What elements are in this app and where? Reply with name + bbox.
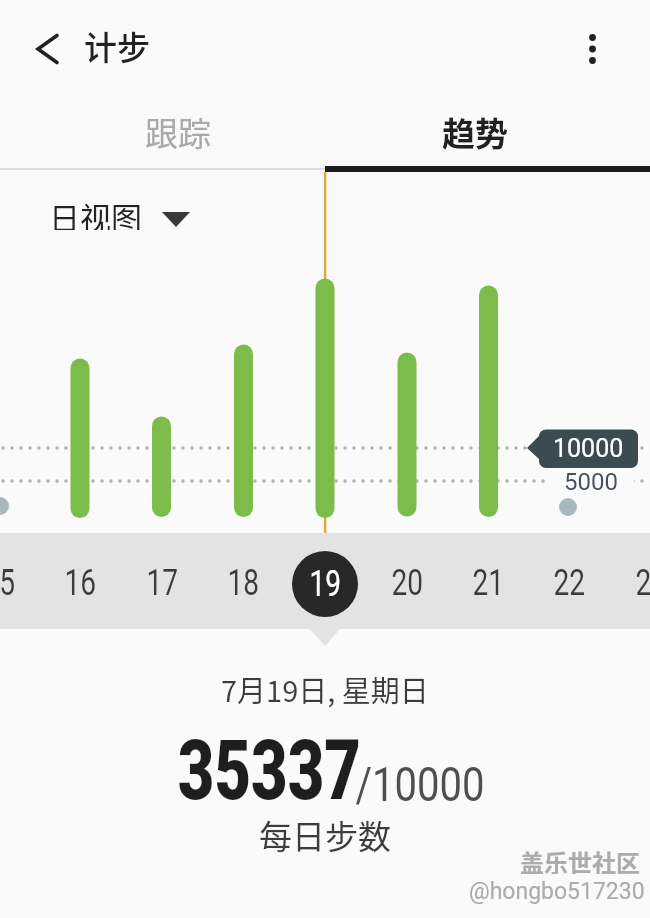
staticText: 17 (146, 562, 178, 604)
button[interactable]: 日视图 (49, 194, 190, 230)
staticText: 21 (472, 562, 504, 604)
staticText: 日视图 (49, 194, 142, 230)
staticText: 盖乐世社区 (520, 844, 640, 874)
button[interactable] (325, 100, 650, 166)
staticText: 22 (553, 562, 585, 604)
button[interactable]: 20 (372, 543, 442, 623)
button[interactable]: 16 (45, 543, 115, 623)
staticText: 19 (309, 563, 341, 605)
staticText: 23 (635, 562, 650, 604)
staticText: 计步 (84, 22, 150, 70)
staticText: 15 (0, 562, 15, 604)
staticText: @hongbo517230 (469, 878, 645, 905)
staticText: 18 (227, 562, 259, 604)
staticText: 20 (391, 562, 423, 604)
button[interactable]: 15 (0, 543, 34, 623)
button[interactable]: 19 (292, 551, 358, 617)
staticText: 16 (64, 562, 96, 604)
staticText: 趋势 (442, 108, 508, 156)
button[interactable]: 21 (453, 543, 523, 623)
button[interactable]: 23 (616, 543, 650, 623)
staticText: 5000 (564, 468, 618, 496)
button[interactable]: 17 (127, 543, 197, 623)
button[interactable]: 18 (208, 543, 278, 623)
button[interactable] (18, 21, 74, 77)
staticText: 跟踪 (145, 108, 211, 156)
button[interactable] (0, 100, 325, 166)
staticText: 10000 (553, 434, 624, 463)
button[interactable] (568, 16, 618, 78)
staticText: 7月19日, 星期日 (221, 668, 429, 710)
button[interactable]: 22 (534, 543, 604, 623)
staticText: 每日步数 (259, 811, 391, 859)
staticText: /10000 (355, 756, 484, 813)
staticText: 35337 (178, 722, 361, 819)
